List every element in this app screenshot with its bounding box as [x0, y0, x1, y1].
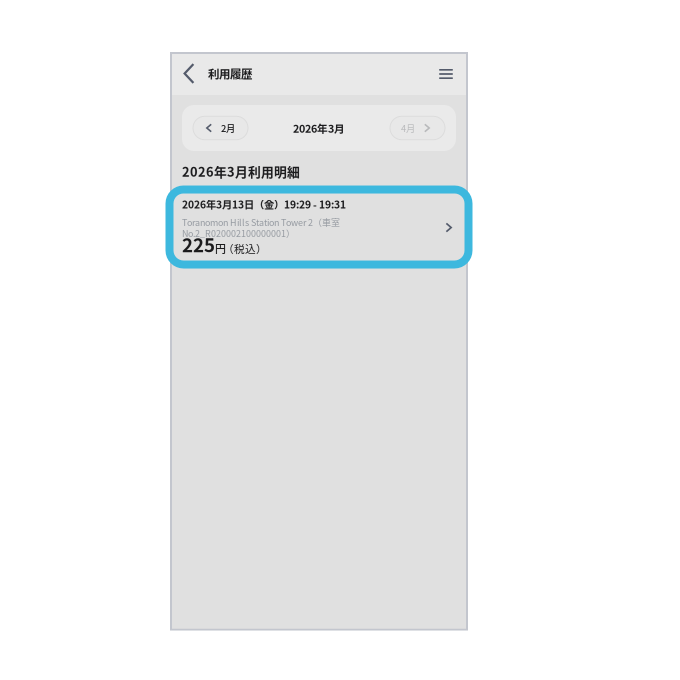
staticText: （税込） [223, 241, 267, 256]
staticText: 2月 [221, 121, 235, 135]
button[interactable]: Back [173, 54, 205, 95]
button[interactable]: 2月 [193, 116, 248, 140]
staticText: 2026年3月13日（金）19:29 - 19:31 [182, 197, 346, 211]
staticText: 2026年3月 [293, 120, 345, 136]
button[interactable]: 2026年3月13日（金）19:29 - 19:31 [172, 187, 466, 262]
button[interactable]: Menu [431, 54, 461, 95]
staticText: 225 [182, 230, 215, 257]
staticText: 円 [215, 240, 226, 256]
button[interactable]: 4月 [390, 116, 445, 140]
staticText: Toranomon Hills Station Tower 2（車室 [182, 216, 340, 228]
staticText: 2026年3月利用明細 [182, 162, 300, 180]
staticText: No.2_R020002100000001） [182, 227, 295, 239]
staticText: 4月 [401, 121, 415, 135]
staticText: 利用履歴 [208, 65, 252, 82]
